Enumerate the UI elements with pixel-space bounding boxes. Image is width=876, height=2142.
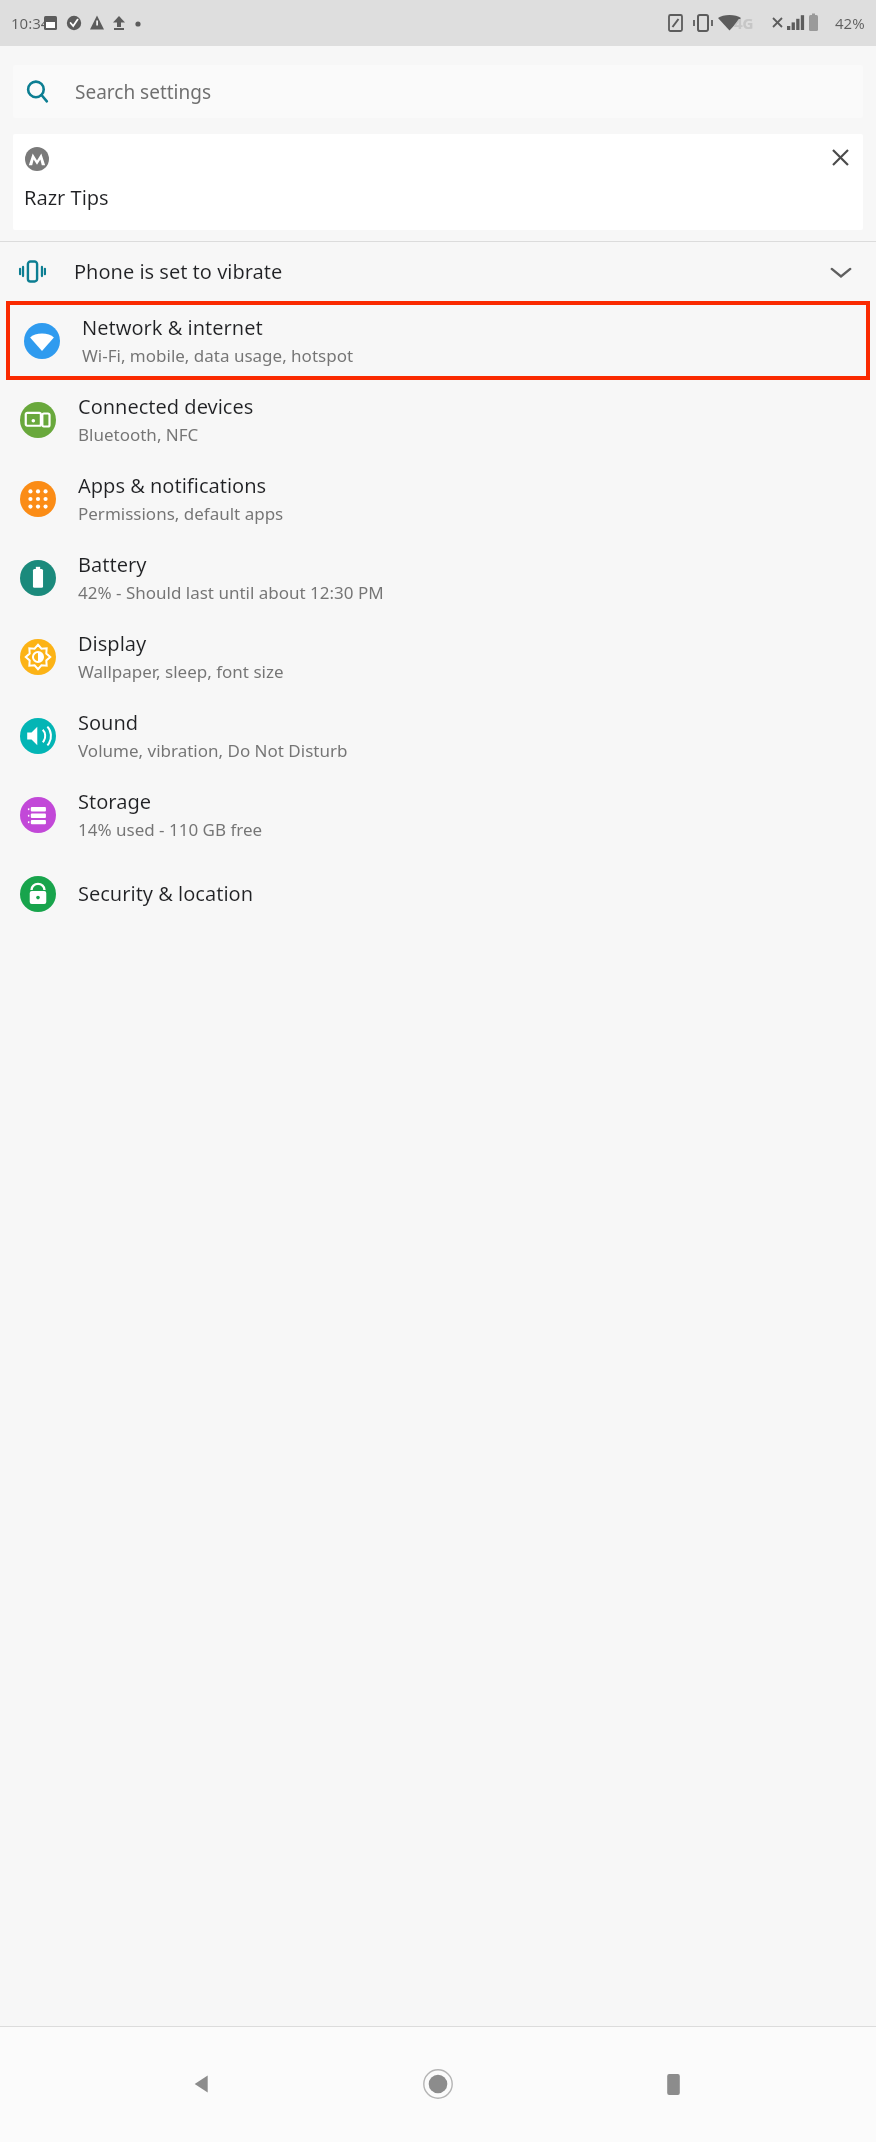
button[interactable]: Network & internet <box>10 305 866 376</box>
staticText: Wallpaper, sleep, font size <box>78 660 284 683</box>
button[interactable]: Back <box>171 2052 235 2116</box>
button[interactable]: Storage <box>0 775 876 854</box>
staticText: Razr Tips <box>24 184 109 211</box>
staticText: Security & location <box>78 880 254 907</box>
staticText: 10:34 <box>11 13 50 33</box>
staticText: 4G <box>734 13 754 33</box>
button[interactable]: Connected devices <box>0 380 876 459</box>
button[interactable]: Battery <box>0 538 876 617</box>
button[interactable]: Security & location <box>0 854 876 933</box>
staticText: Sound <box>78 709 139 736</box>
staticText: Permissions, default apps <box>78 502 284 525</box>
staticText: 42% <box>835 13 865 33</box>
staticText: Bluetooth, NFC <box>78 423 199 446</box>
button[interactable]: Dismiss <box>13 134 863 230</box>
staticText: Volume, vibration, Do Not Disturb <box>78 739 348 762</box>
button[interactable]: Phone is set to vibrate <box>0 242 876 301</box>
button[interactable]: Home <box>406 2052 470 2116</box>
staticText: 14% used - 110 GB free <box>78 818 263 841</box>
button[interactable]: Apps & notifications <box>0 459 876 538</box>
staticText: Wi-Fi, mobile, data usage, hotspot <box>82 344 354 367</box>
button[interactable]: Search settings <box>13 65 863 118</box>
button[interactable]: Recent apps <box>641 2052 705 2116</box>
staticText: Apps & notifications <box>78 472 267 499</box>
staticText: Search settings <box>75 79 212 105</box>
button[interactable]: Sound <box>0 696 876 775</box>
staticText: Display <box>78 630 147 657</box>
staticText: Network & internet <box>82 314 263 341</box>
button[interactable]: Dismiss <box>823 140 857 174</box>
staticText: Storage <box>78 788 151 815</box>
button[interactable]: Display <box>0 617 876 696</box>
staticText: 42% - Should last until about 12:30 PM <box>78 581 384 604</box>
staticText: Phone is set to vibrate <box>74 258 283 285</box>
staticText: Connected devices <box>78 393 254 420</box>
staticText: Battery <box>78 551 147 578</box>
